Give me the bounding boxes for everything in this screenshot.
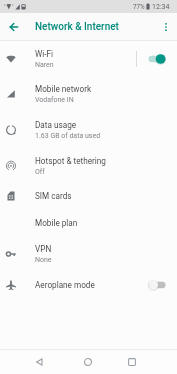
button[interactable]: More options	[155, 13, 177, 40]
staticText: 77%	[133, 3, 145, 10]
staticText: Mobile plan	[35, 218, 78, 228]
staticText: SIM cards	[35, 191, 72, 201]
button[interactable]: Data usage	[0, 112, 177, 148]
staticText: Mobile network	[35, 84, 92, 94]
staticText: VPN	[35, 244, 52, 254]
button[interactable]: Mobile network	[0, 76, 177, 112]
staticText: None	[35, 256, 52, 264]
button[interactable]: Wi-Fi	[0, 41, 177, 77]
button[interactable]: Mobile plan	[0, 210, 177, 236]
button[interactable]: Turn off	[148, 51, 166, 67]
button[interactable]: Recent apps	[120, 350, 144, 374]
staticText: Data usage	[35, 120, 77, 130]
button[interactable]: Back	[28, 350, 52, 374]
staticText: 12:34	[152, 3, 170, 11]
staticText: 1.63 GB of data used	[35, 132, 101, 140]
button[interactable]: Hotspot & tethering	[0, 148, 177, 184]
button[interactable]: Turn on	[148, 277, 166, 293]
staticText: Vodafone IN	[35, 96, 74, 104]
button[interactable]: Home	[76, 350, 100, 374]
staticText: Off	[35, 168, 45, 176]
button[interactable]: Aeroplane mode	[0, 272, 177, 298]
button[interactable]: Navigate up	[4, 13, 24, 40]
staticText: Wi-Fi	[35, 49, 54, 59]
button[interactable]: SIM cards	[0, 183, 177, 209]
button[interactable]: VPN	[0, 236, 177, 272]
staticText: Aeroplane mode	[35, 280, 95, 290]
staticText: Naren	[35, 61, 54, 69]
staticText: Network & Internet	[35, 21, 119, 33]
staticText: Hotspot & tethering	[35, 156, 106, 166]
